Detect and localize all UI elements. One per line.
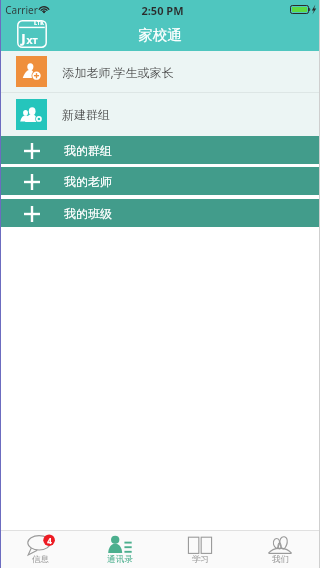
staticText: 我的班级 — [64, 206, 112, 221]
staticText: 家校通 — [138, 26, 182, 44]
staticText: 我们 — [272, 554, 289, 565]
staticText: 添加老师,学生或家长 — [62, 64, 174, 80]
button[interactable]: 4 — [0, 531, 80, 568]
staticText: 信息 — [32, 554, 49, 565]
staticText: Carrier — [5, 3, 38, 17]
staticText: 学习 — [192, 554, 209, 565]
button[interactable]: 学习 — [160, 531, 240, 568]
button[interactable]: 我的班级 — [0, 199, 320, 227]
button[interactable]: 通讯录 — [80, 531, 160, 568]
staticText: J — [21, 29, 26, 47]
staticText: 4 — [47, 535, 52, 546]
staticText: 我的老师 — [64, 174, 112, 189]
button[interactable]: 我的老师 — [0, 167, 320, 195]
button[interactable]: 新建群组 — [0, 93, 320, 136]
staticText: XT — [26, 34, 38, 46]
button[interactable]: 我的群组 — [0, 136, 320, 164]
button[interactable]: JXT logo — [17, 20, 47, 48]
button[interactable]: 添加老师,学生或家长 — [0, 51, 320, 92]
staticText: 通讯录 — [107, 554, 133, 565]
staticText: 新建群组 — [62, 107, 110, 122]
staticText: 2:50 PM — [141, 3, 184, 18]
staticText: LTK — [34, 19, 44, 26]
staticText: 我的群组 — [64, 143, 112, 158]
button[interactable]: 我们 — [240, 531, 320, 568]
